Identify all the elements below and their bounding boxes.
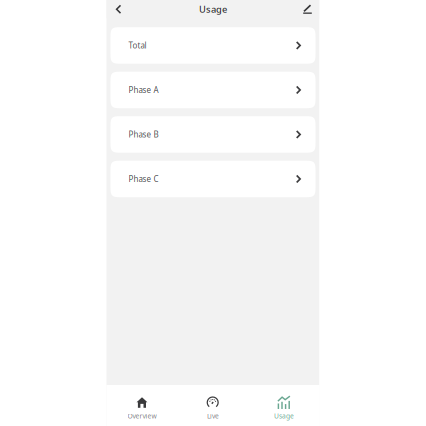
staticText: Total: [128, 40, 146, 51]
button[interactable]: Overview: [106, 395, 177, 421]
staticText: Phase A: [128, 85, 158, 95]
button[interactable]: Total: [110, 27, 315, 64]
button[interactable]: Live: [177, 395, 248, 421]
button[interactable]: Phase B: [110, 116, 315, 153]
button[interactable]: Usage: [248, 395, 319, 421]
staticText: Usage: [199, 3, 227, 15]
staticText: Live: [207, 412, 219, 420]
button[interactable]: Phase A: [110, 72, 315, 108]
staticText: Usage: [274, 412, 294, 420]
button[interactable]: Edit: [299, 0, 315, 18]
button[interactable]: Phase C: [110, 161, 315, 197]
staticText: Phase C: [128, 174, 158, 184]
button[interactable]: Back: [110, 0, 126, 18]
staticText: Phase B: [128, 129, 158, 140]
staticText: Overview: [127, 412, 156, 420]
